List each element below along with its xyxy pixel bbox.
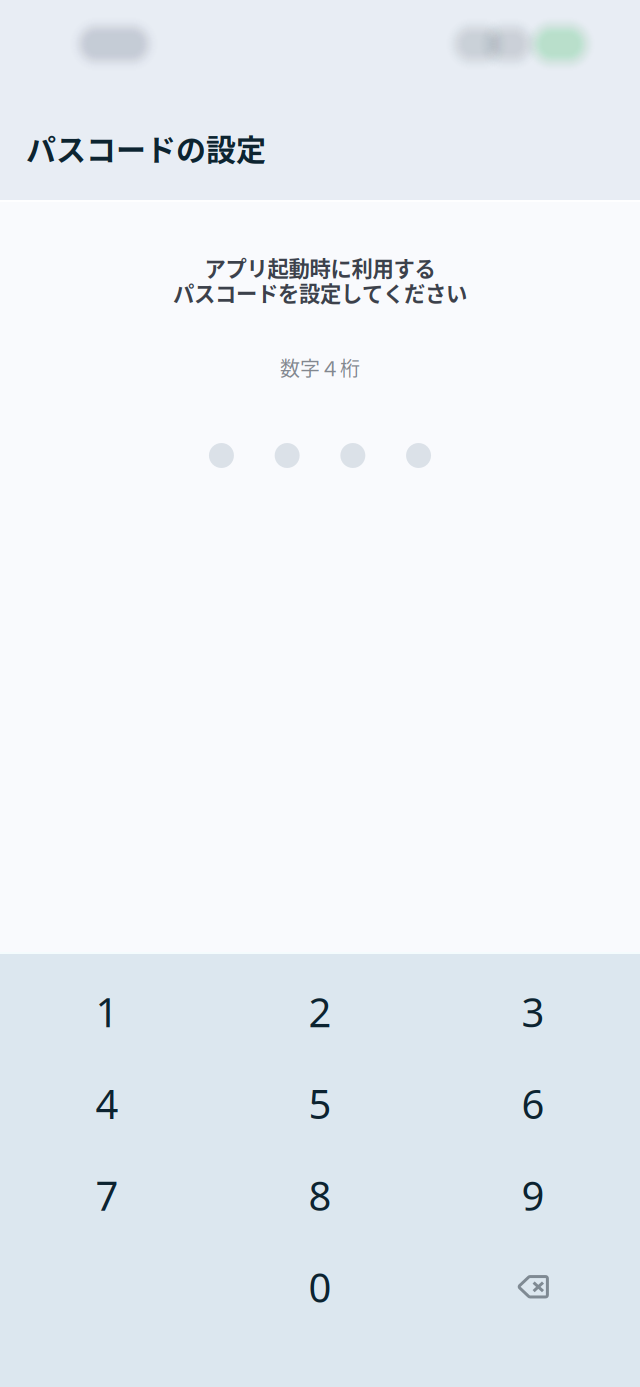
button[interactable]: 1 [0, 966, 213, 1058]
staticText: 1 [95, 985, 118, 1038]
button[interactable]: 9 [426, 1149, 639, 1241]
button[interactable]: 6 [426, 1058, 639, 1149]
staticText: 4 [95, 1077, 118, 1130]
staticText: 7 [95, 1169, 118, 1222]
staticText: アプリ起動時に利用する [204, 252, 435, 283]
button[interactable]: 2 [213, 966, 426, 1058]
button[interactable]: 3 [426, 966, 639, 1058]
staticText: 5 [308, 1077, 331, 1130]
button[interactable]: 8 [213, 1149, 426, 1241]
staticText: 6 [521, 1077, 544, 1130]
button[interactable]: 5 [213, 1058, 426, 1149]
staticText: パスコードの設定 [26, 126, 266, 169]
button[interactable]: 削除 [426, 1241, 639, 1333]
button[interactable]: 0 [213, 1241, 426, 1333]
staticText: 数字４桁 [280, 353, 360, 382]
staticText: 9 [521, 1169, 544, 1222]
staticText: 3 [521, 985, 544, 1038]
staticText: 0 [308, 1260, 331, 1313]
button[interactable]: 7 [0, 1149, 213, 1241]
staticText: 2 [308, 985, 331, 1038]
button[interactable]: 4 [0, 1058, 213, 1149]
staticText: 8 [308, 1169, 331, 1222]
staticText: パスコードを設定してください [173, 277, 467, 308]
